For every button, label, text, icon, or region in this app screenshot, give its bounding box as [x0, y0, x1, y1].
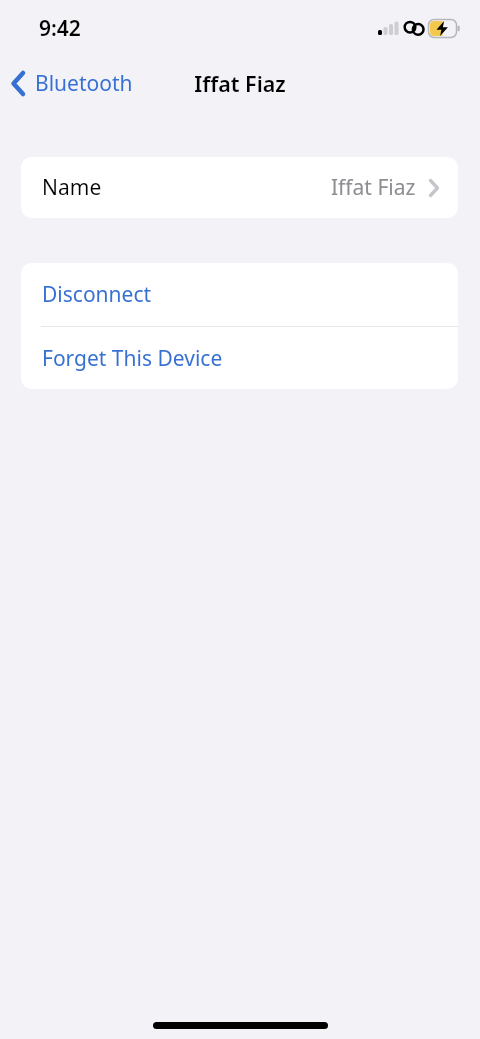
- staticText: Disconnect: [42, 280, 152, 309]
- staticText: Iffat Fiaz: [331, 173, 416, 202]
- staticText: Forget This Device: [42, 344, 223, 373]
- staticText: Bluetooth: [35, 69, 133, 98]
- staticText: Name: [42, 173, 102, 202]
- button[interactable]: Disconnect: [21, 263, 458, 326]
- staticText: 9:42: [39, 14, 81, 43]
- staticText: Iffat Fiaz: [0, 69, 480, 98]
- button[interactable]: Name: [21, 157, 458, 218]
- button[interactable]: Bluetooth: [11, 69, 133, 98]
- button[interactable]: Forget This Device: [21, 327, 458, 389]
